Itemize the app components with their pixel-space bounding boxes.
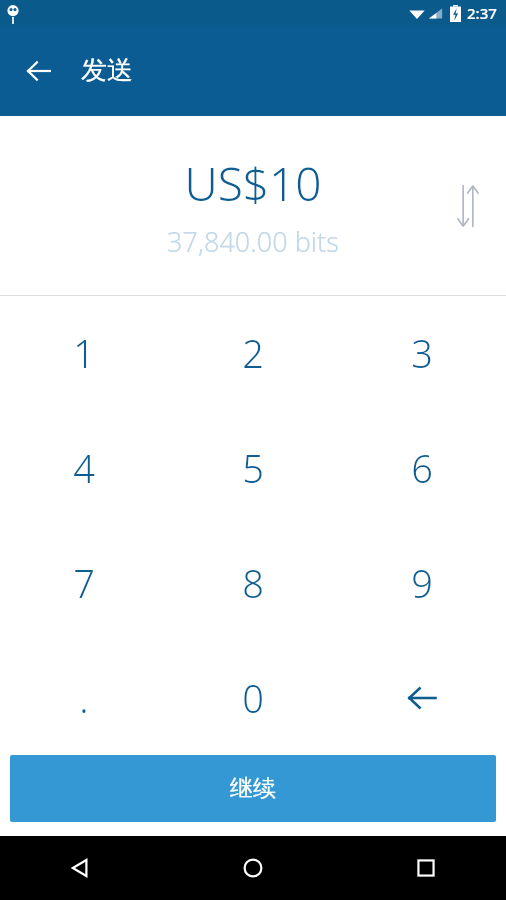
button[interactable]: Backspace bbox=[337, 640, 506, 755]
button[interactable]: 5 bbox=[168, 410, 337, 525]
staticText: 4 bbox=[73, 442, 95, 494]
staticText: 3 bbox=[411, 327, 433, 379]
button[interactable]: 7 bbox=[0, 525, 168, 640]
button[interactable]: 9 bbox=[337, 525, 506, 640]
button[interactable]: Home bbox=[229, 844, 277, 892]
button[interactable]: 继续 bbox=[10, 755, 496, 822]
button[interactable]: Swap currency bbox=[446, 184, 490, 228]
staticText: 5 bbox=[242, 442, 264, 494]
staticText: 6 bbox=[411, 442, 433, 494]
staticText: 0 bbox=[242, 672, 264, 724]
staticText: US$10 bbox=[184, 152, 322, 215]
button[interactable]: Back bbox=[16, 48, 62, 94]
staticText: 2:37 bbox=[467, 3, 497, 23]
button[interactable]: 3 bbox=[337, 296, 506, 410]
staticText: 2 bbox=[242, 327, 264, 379]
button[interactable]: 2 bbox=[168, 296, 337, 410]
staticText: 继续 bbox=[230, 774, 276, 803]
button[interactable]: Back bbox=[56, 844, 104, 892]
button[interactable]: 4 bbox=[0, 410, 168, 525]
staticText: 1 bbox=[73, 327, 95, 379]
button[interactable]: Recents bbox=[402, 844, 450, 892]
staticText: 37,840.00 bits bbox=[167, 223, 339, 260]
button[interactable]: 0 bbox=[168, 640, 337, 755]
button[interactable]: 8 bbox=[168, 525, 337, 640]
staticText: 7 bbox=[73, 557, 95, 609]
button[interactable]: 1 bbox=[0, 296, 168, 410]
button[interactable]: . bbox=[0, 640, 168, 755]
staticText: 8 bbox=[242, 557, 264, 609]
staticText: . bbox=[79, 672, 89, 724]
button[interactable]: 6 bbox=[337, 410, 506, 525]
staticText: 9 bbox=[411, 557, 433, 609]
staticText: 发送 bbox=[81, 54, 133, 87]
